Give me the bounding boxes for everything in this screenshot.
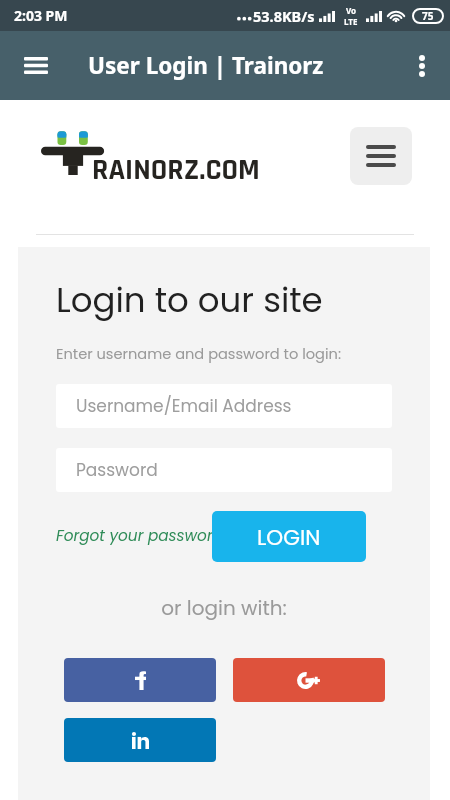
- staticText: Enter username and password to login:: [56, 344, 341, 364]
- button[interactable]: Login with LinkedIn: [64, 718, 216, 762]
- button[interactable]: Username/Email Address: [56, 384, 392, 428]
- staticText: Login to our site: [56, 276, 323, 324]
- staticText: User Login | Trainorz: [88, 50, 324, 81]
- staticText: Username/Email Address: [76, 394, 292, 418]
- button[interactable]: Open navigation drawer: [11, 41, 60, 90]
- button[interactable]: Forgot your password?: [56, 525, 231, 546]
- button[interactable]: LOGIN: [212, 511, 366, 562]
- staticText: 53.8KB/s: [253, 6, 315, 26]
- button[interactable]: Site navigation menu: [350, 127, 412, 185]
- staticText: LTE: [344, 16, 358, 27]
- button[interactable]: Login with Google: [233, 658, 385, 702]
- button[interactable]: Login with Facebook: [64, 658, 216, 702]
- staticText: LOGIN: [257, 522, 321, 552]
- staticText: 75: [422, 9, 434, 23]
- staticText: RAINORZ.COM: [92, 151, 260, 189]
- staticText: or login with:: [18, 594, 430, 622]
- staticText: Password: [76, 458, 158, 482]
- button[interactable]: More options: [398, 42, 446, 90]
- staticText: Vo: [346, 5, 357, 16]
- button[interactable]: Password: [56, 448, 392, 492]
- staticText: 2:03 PM: [14, 6, 68, 25]
